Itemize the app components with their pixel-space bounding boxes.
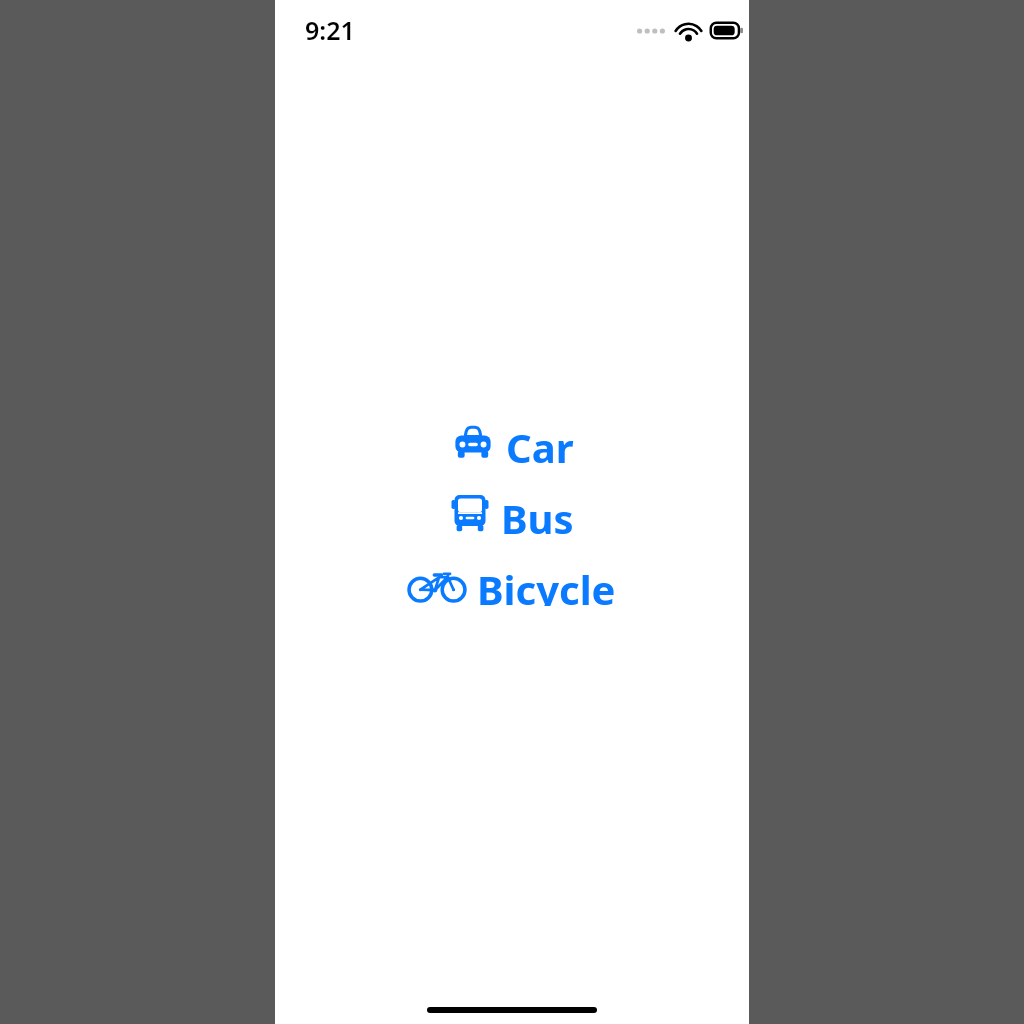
- staticText: Bus: [501, 491, 574, 535]
- other: Bicycle: [408, 564, 466, 604]
- staticText: 9:21: [305, 13, 355, 47]
- other: Car: [451, 422, 495, 462]
- button[interactable]: Bus: [450, 491, 574, 535]
- other: Bus: [450, 493, 490, 533]
- staticText: Car: [506, 420, 574, 464]
- staticText: Bicycle: [477, 562, 616, 606]
- button[interactable]: Bicycle: [408, 562, 616, 606]
- button[interactable]: Car: [451, 420, 574, 464]
